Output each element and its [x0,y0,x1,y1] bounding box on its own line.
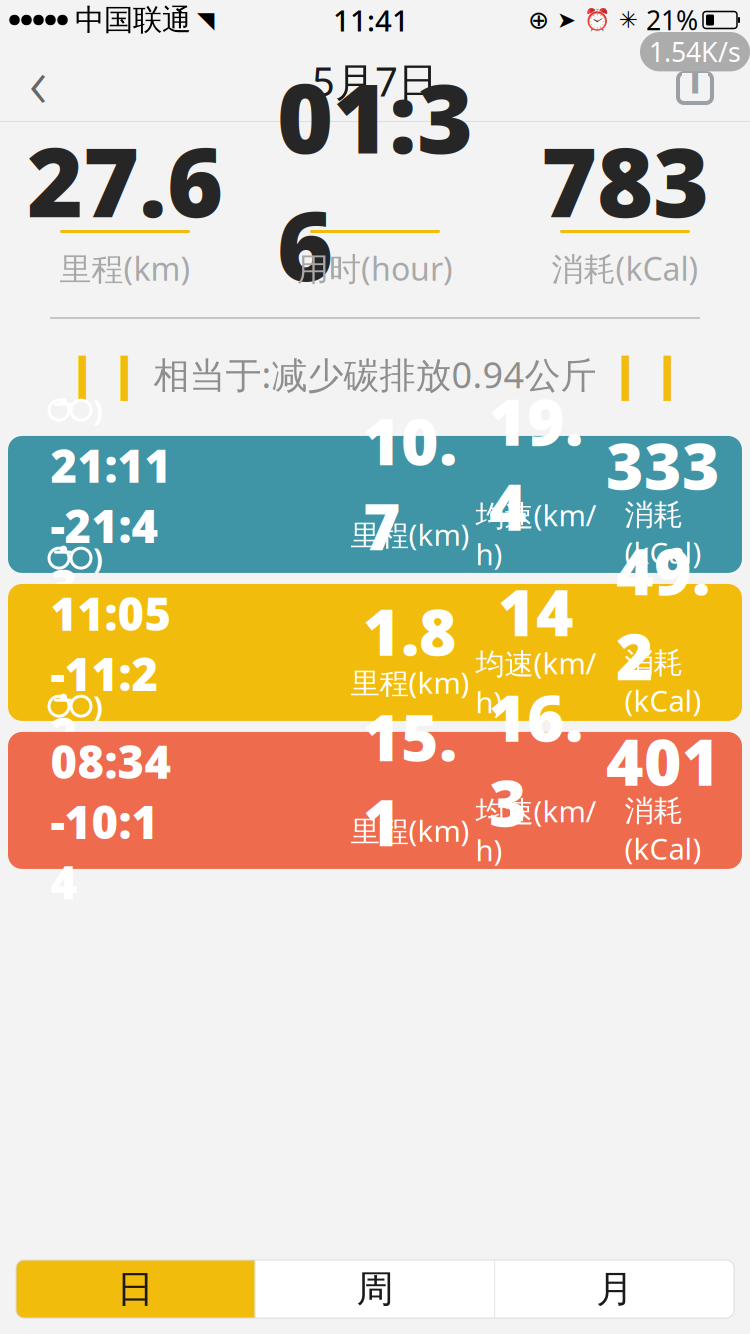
staticText: 16.3 [489,674,583,844]
staticText: 333 [606,422,720,507]
staticText: 月 [596,1266,633,1312]
staticText: 里程(km) [350,663,469,702]
staticText: 1.8 [363,588,457,673]
staticText: ⊕ [528,6,549,34]
staticText: ❙ [63,348,101,400]
staticText: ➤ [557,7,576,33]
staticText: 10.7 [363,398,457,568]
staticText: ◥ [197,7,214,33]
staticText: 21% [646,2,698,38]
staticText: 里程(km) [350,515,469,554]
staticText: 里程(km) [59,247,190,289]
staticText: 消耗(kCal) [624,497,701,572]
staticText: 中国联通 [75,2,191,38]
staticText: 401 [606,718,720,803]
staticText: 11:41 [333,0,409,39]
staticText: 消耗(kCal) [624,793,701,868]
staticText: ❙ [648,348,686,400]
button[interactable]: ) [8,732,742,869]
staticText: 01:36 [277,52,473,307]
staticText: 周 [356,1266,393,1312]
button[interactable]: 日 [16,1260,255,1318]
button[interactable]: Share [640,40,750,122]
staticText: ) [93,687,103,726]
staticText: 1.54K/s [649,34,741,69]
staticText: 15.1 [363,694,457,864]
staticText: ❙ [105,348,143,400]
button[interactable]: 周 [256,1260,494,1318]
staticText: 11:05-11:22 [50,583,171,764]
staticText: 14 [498,569,574,654]
button[interactable]: Back [0,40,76,122]
staticText: 08:34-10:14 [50,731,171,912]
staticText: 783 [541,116,709,244]
staticText: 21:11-21:43 [50,435,171,616]
staticText: ❙ [606,348,644,400]
staticText: 均速(km/h) [475,791,596,869]
button[interactable]: ) [8,436,742,573]
staticText: 相当于:减少碳排放0.94公斤 [153,350,596,398]
staticText: 5月7日 [312,54,438,107]
staticText: 里程(km) [350,811,469,850]
button[interactable]: ) [8,584,742,721]
staticText: 消耗(kCal) [551,247,698,289]
staticText: ⏰ [584,8,611,32]
staticText: ‹ [29,35,47,127]
staticText: 日 [117,1266,154,1312]
button[interactable]: 月 [495,1260,734,1318]
staticText: ↑ [674,47,716,105]
staticText: ) [93,539,103,578]
staticText: ) [93,391,103,430]
staticText: 均速(km/h) [475,643,596,721]
staticText: 均速(km/h) [475,495,596,573]
staticText: ✳ [619,7,638,33]
staticText: 49.2 [616,528,710,698]
staticText: 消耗(kCal) [624,645,701,720]
staticText: 用时(hour) [297,247,453,289]
staticText: 27.6 [27,116,223,244]
staticText: 19.4 [489,378,583,548]
